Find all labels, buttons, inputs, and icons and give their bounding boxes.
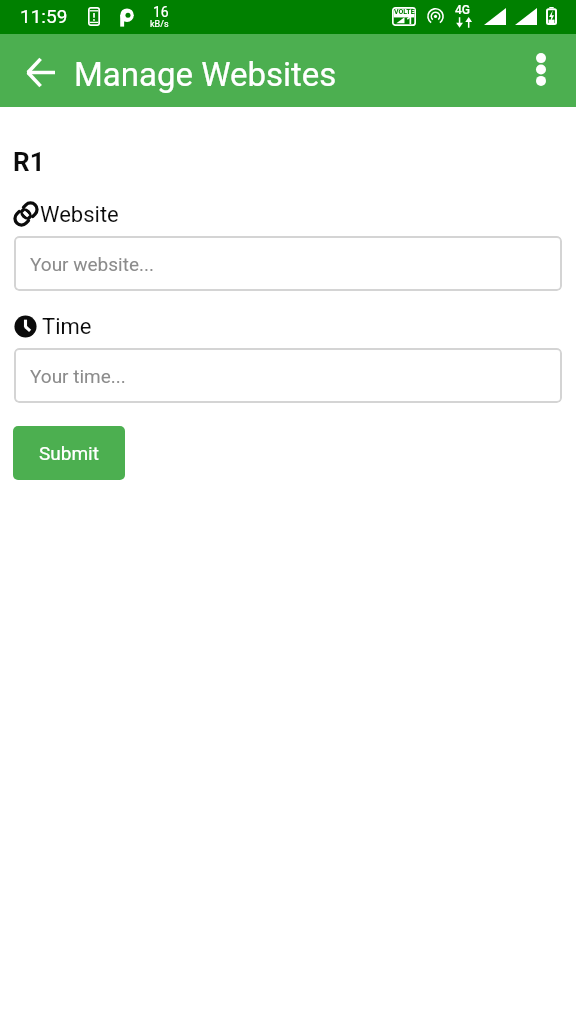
button[interactable]: Your time... [14, 348, 562, 403]
button[interactable]: More options [517, 45, 565, 93]
staticText: Your website... [30, 253, 155, 275]
staticText: 16 [153, 4, 169, 20]
staticText: Website [40, 202, 119, 228]
button[interactable]: Your website... [14, 236, 562, 291]
staticText: kB/s [150, 19, 169, 30]
staticText: 4G [455, 3, 470, 17]
staticText: Time [42, 314, 92, 340]
button[interactable]: Submit [13, 426, 125, 480]
staticText: VOLTE [394, 8, 415, 16]
staticText: Submit [39, 442, 99, 464]
staticText: Manage Websites [74, 55, 337, 94]
staticText: R1 [13, 147, 45, 177]
staticText: 11:59 [20, 5, 68, 27]
staticText: Your time... [30, 365, 126, 387]
button[interactable]: Back [12, 44, 68, 100]
